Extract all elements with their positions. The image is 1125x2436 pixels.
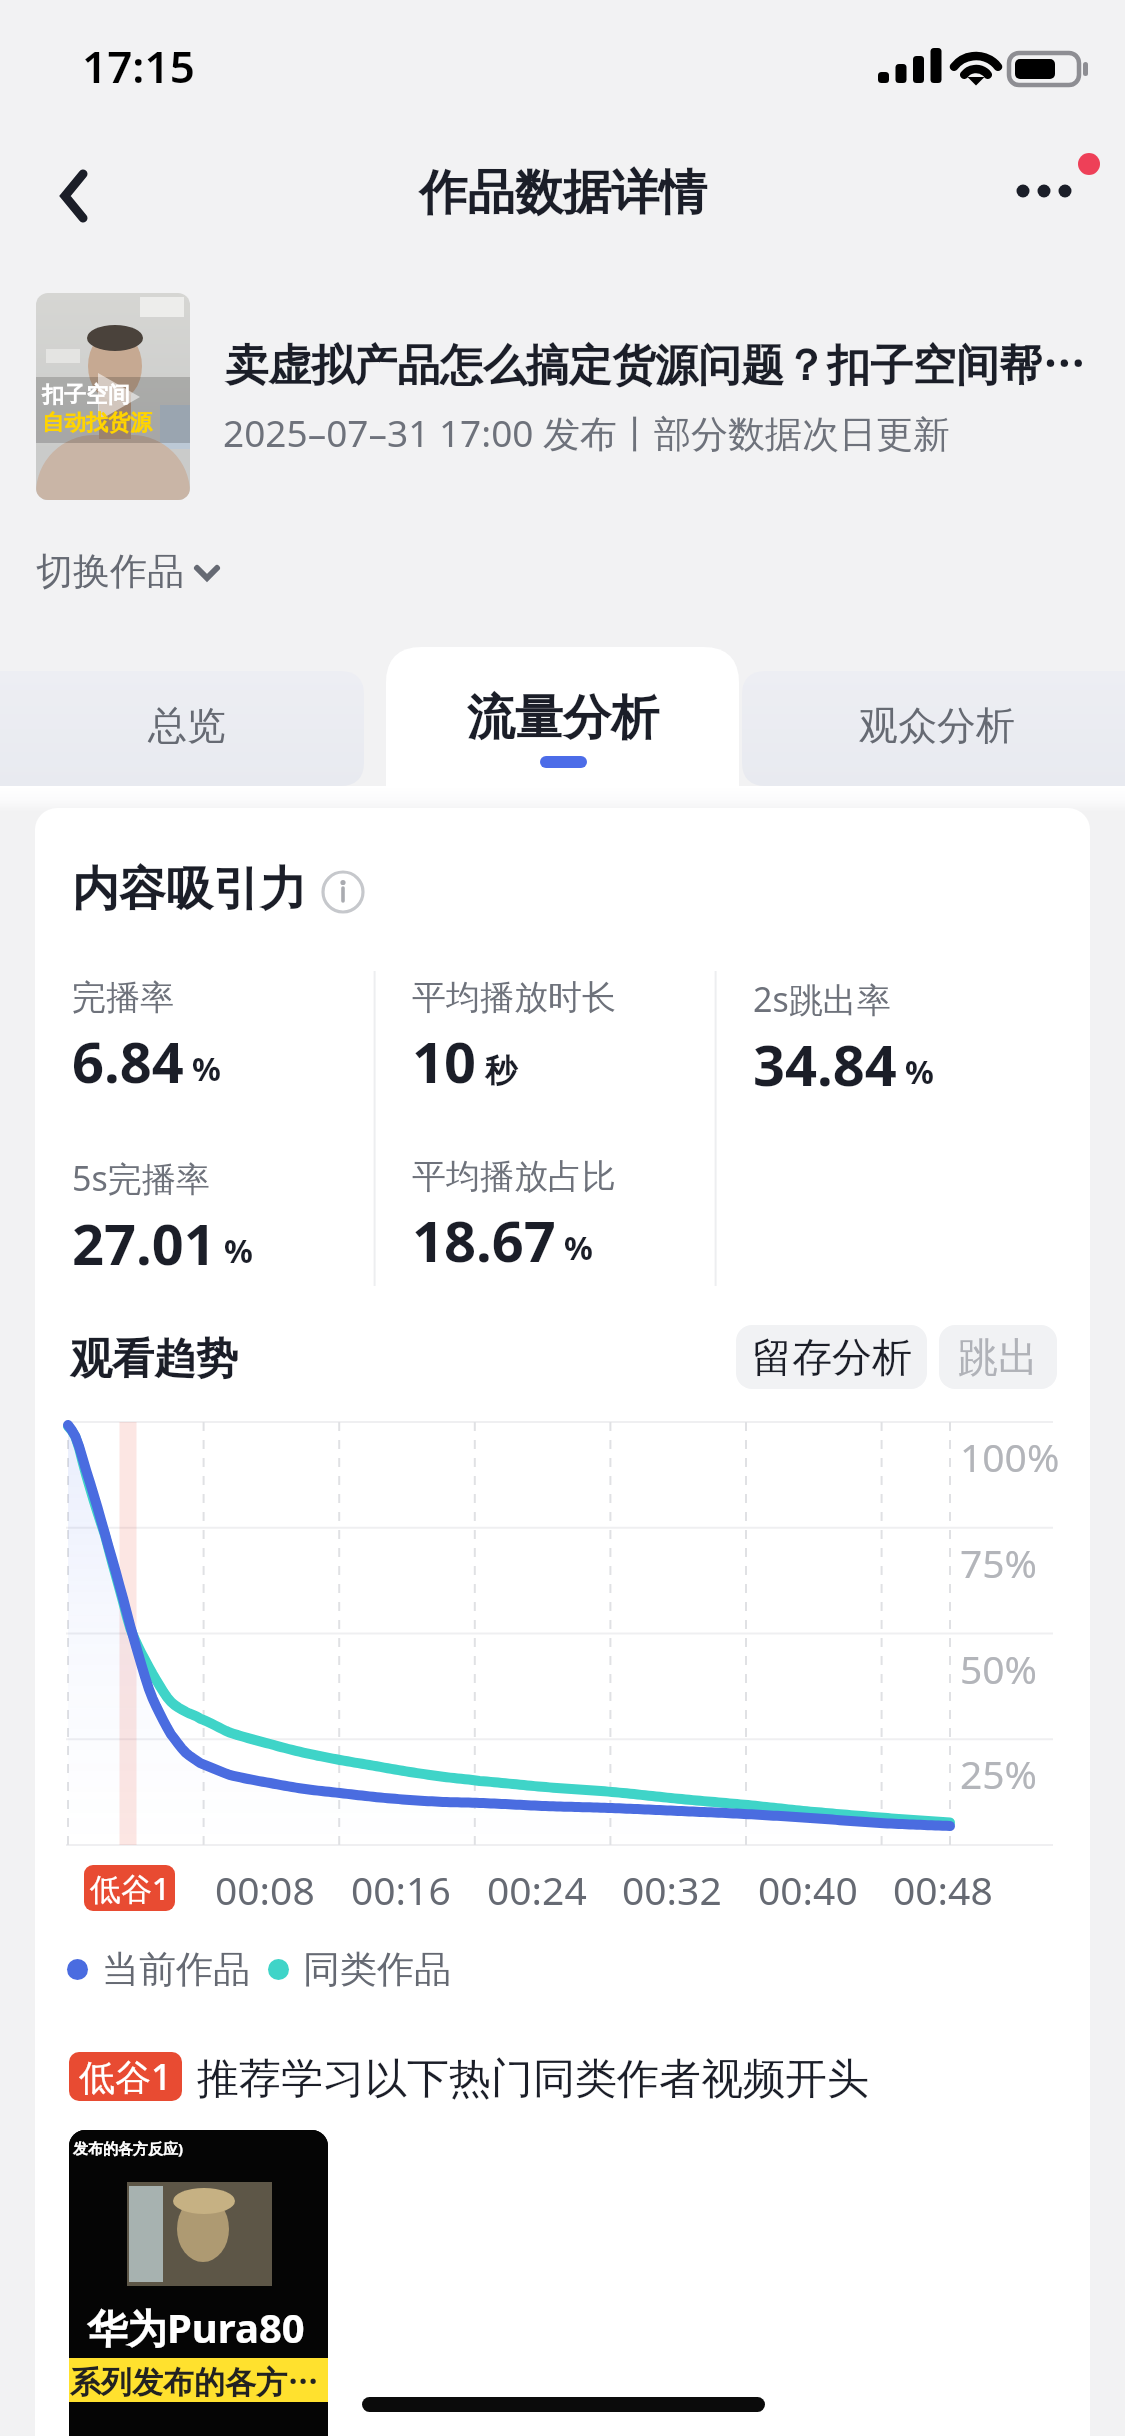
staticText: 秒	[485, 1051, 517, 1091]
staticText: 流量分析	[467, 688, 659, 748]
staticText: 10	[412, 1023, 477, 1099]
button[interactable]: 当前作品	[67, 1946, 451, 1993]
staticText: 总览	[148, 701, 226, 750]
staticText: 17:15	[82, 36, 195, 96]
staticText: 留存分析	[752, 1332, 912, 1382]
button[interactable]: 平均播放时长	[412, 976, 616, 1099]
button[interactable]: 发布的各方反应)	[69, 2130, 328, 2436]
staticText: 6.84	[72, 1023, 184, 1099]
staticText: 00:24	[487, 1863, 587, 1916]
staticText: 低谷1	[90, 1867, 170, 1909]
staticText: 作品数据详情	[419, 163, 707, 223]
staticText: 34.84	[753, 1026, 897, 1102]
staticText: 同类作品	[303, 1946, 451, 1993]
button[interactable]: 平均播放占比	[412, 1155, 616, 1278]
staticText: 25%	[960, 1747, 1038, 1800]
staticText: 27.01	[72, 1205, 216, 1281]
staticText: 低谷1	[79, 2052, 172, 2101]
staticText: 18.67	[412, 1202, 556, 1278]
button[interactable]: 流量分析	[386, 647, 739, 786]
staticText: 5s完播率	[72, 1155, 210, 1201]
staticText: 内容吸引力	[72, 860, 307, 919]
staticText: 2s跳出率	[753, 976, 891, 1022]
staticText: 00:08	[215, 1863, 315, 1916]
staticText: %	[224, 1229, 253, 1273]
button[interactable]: 观众分析	[742, 671, 1125, 786]
staticText: 华为Pura80	[87, 2300, 305, 2355]
staticText: 50%	[960, 1642, 1038, 1695]
staticText: 卖虚拟产品怎么搞定货源问题？扣子空间帮你…	[225, 339, 1115, 393]
staticText: 平均播放占比	[412, 1155, 616, 1198]
staticText: 推荐学习以下热门同类作者视频开头	[197, 2053, 869, 2106]
button[interactable]: 完播率	[72, 976, 221, 1099]
button[interactable]: 切换作品	[36, 548, 221, 595]
staticText: 扣子空间	[42, 381, 130, 409]
button[interactable]: More options	[990, 141, 1120, 251]
staticText: 00:32	[622, 1863, 722, 1916]
staticText: %	[905, 1050, 934, 1094]
staticText: 观众分析	[859, 701, 1015, 750]
staticText: 75%	[960, 1536, 1038, 1589]
staticText: 自动找货源	[42, 409, 152, 437]
staticText: 发布的各方反应)	[73, 2138, 184, 2158]
staticText: 跳出	[958, 1332, 1038, 1382]
button[interactable]: Back	[16, 141, 126, 251]
staticText: 平均播放时长	[412, 976, 616, 1019]
staticText: 100%	[960, 1430, 1060, 1483]
button[interactable]: 扣子空间	[36, 293, 190, 500]
button[interactable]: 跳出	[939, 1325, 1057, 1389]
staticText: 观看趋势	[70, 1333, 238, 1386]
staticText: 00:48	[893, 1863, 993, 1916]
staticText: 完播率	[72, 976, 174, 1019]
staticText: 系列发布的各方反应	[70, 2363, 328, 2402]
button[interactable]: 2s跳出率	[753, 976, 934, 1102]
staticText: 切换作品	[36, 548, 184, 595]
button[interactable]: 留存分析	[736, 1325, 927, 1389]
staticText: %	[192, 1047, 221, 1091]
staticText: 2025–07–31 17:00 发布丨部分数据次日更新	[223, 407, 1063, 458]
button[interactable]: 5s完播率	[72, 1155, 253, 1281]
staticText: 00:16	[351, 1863, 451, 1916]
staticText: %	[564, 1226, 593, 1270]
staticText: 00:40	[758, 1863, 858, 1916]
button[interactable]: 总览	[0, 671, 364, 786]
staticText: 当前作品	[102, 1946, 250, 1993]
